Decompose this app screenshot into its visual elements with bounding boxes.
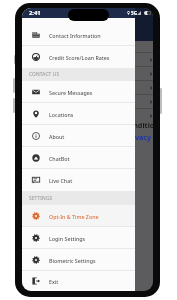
staticText: 2:41	[29, 9, 41, 17]
staticText: Secure Messages	[49, 89, 93, 96]
staticText: Opt-In & Time Zone	[49, 213, 99, 220]
staticText: 5G	[131, 10, 137, 16]
button[interactable]: Opt-In & Time Zone	[22, 205, 135, 227]
button[interactable]: ChatBot	[22, 147, 135, 169]
staticText: SETTINGS	[29, 195, 53, 202]
button[interactable]: About	[22, 125, 135, 147]
staticText: Credit Score/Loan Rates	[49, 54, 110, 61]
button[interactable]: Secure Messages	[22, 81, 135, 103]
staticText: Locations	[49, 111, 74, 118]
staticText: CONTACT US	[29, 71, 60, 78]
button[interactable]: Credit Score/Loan Rates	[22, 46, 135, 68]
button[interactable]: Live Chat	[22, 169, 135, 191]
staticText: conditions and the	[125, 120, 153, 130]
staticText: Exit	[49, 278, 59, 285]
staticText: Contact Information	[49, 32, 101, 39]
staticText: Login Settings	[49, 235, 86, 242]
staticText: Biometric Settings	[49, 257, 96, 264]
staticText: About	[49, 133, 65, 140]
button[interactable]: Login Settings	[22, 227, 135, 249]
button[interactable]: Contact Information	[22, 24, 135, 46]
staticText: privacy policy to use app	[125, 132, 153, 142]
button[interactable]: Exit	[22, 271, 135, 291]
button[interactable]: Locations	[22, 103, 135, 125]
staticText: ChatBot	[49, 155, 70, 162]
button[interactable]: Biometric Settings	[22, 249, 135, 271]
staticText: Live Chat	[49, 177, 73, 184]
